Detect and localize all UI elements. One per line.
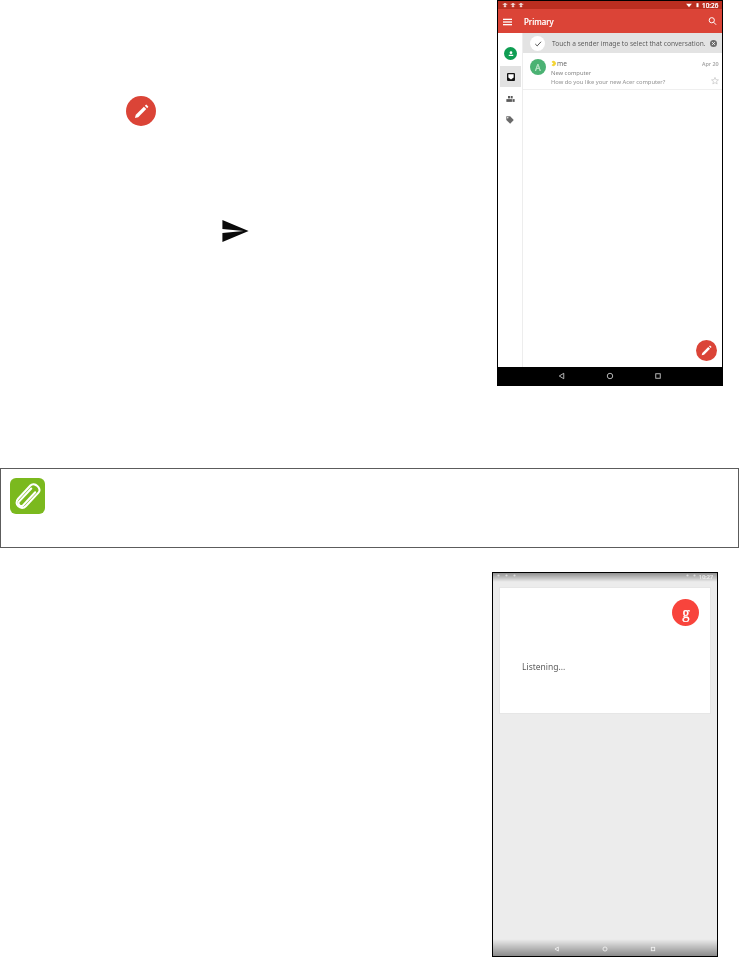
button[interactable]: Inbox xyxy=(500,66,521,87)
button[interactable]: Home xyxy=(598,942,612,956)
button[interactable]: A xyxy=(523,53,722,89)
button[interactable]: Compose xyxy=(126,96,156,126)
staticText: 10:26 xyxy=(702,1,719,9)
button[interactable]: Back xyxy=(553,367,571,385)
button[interactable]: Note xyxy=(10,478,45,514)
button[interactable]: Compose xyxy=(696,340,717,361)
button[interactable]: Google xyxy=(672,599,699,626)
button[interactable]: Promotions xyxy=(503,113,517,127)
staticText: How do you like your new Acer computer? xyxy=(551,78,666,86)
staticText: g xyxy=(682,603,690,622)
button[interactable]: Home xyxy=(601,367,619,385)
staticText: Primary xyxy=(524,16,554,27)
button[interactable]: Search xyxy=(702,9,722,33)
button[interactable]: Back xyxy=(550,942,564,956)
staticText: A xyxy=(535,61,541,73)
staticText: Listening... xyxy=(522,661,566,673)
staticText: me xyxy=(557,59,567,68)
button[interactable]: Send xyxy=(222,219,249,243)
button[interactable]: Account xyxy=(504,47,517,60)
button[interactable]: Recents xyxy=(646,942,660,956)
button[interactable]: Social xyxy=(503,92,517,106)
button[interactable]: Dismiss xyxy=(707,37,719,49)
staticText: Touch a sender image to select that conv… xyxy=(552,39,706,48)
staticText: 10:27 xyxy=(699,573,714,580)
button[interactable]: Recents xyxy=(649,367,667,385)
staticText: Apr 20 xyxy=(702,60,719,67)
button[interactable]: Touch a sender image to select that conv… xyxy=(523,33,722,53)
staticText: New computer xyxy=(551,69,592,77)
button[interactable]: Menu xyxy=(498,9,516,33)
